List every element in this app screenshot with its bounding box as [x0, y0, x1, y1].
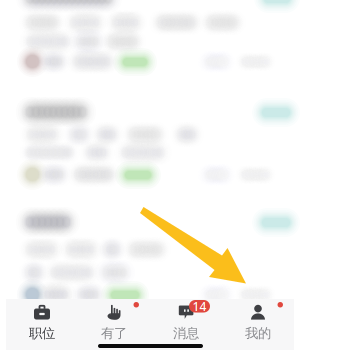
staticText: 我的: [245, 325, 271, 341]
staticText: 职位: [29, 325, 55, 341]
button[interactable]: [6, 198, 294, 306]
button[interactable]: 有了: [78, 299, 150, 350]
staticText: 14: [192, 298, 206, 314]
button[interactable]: [6, 90, 294, 198]
staticText: 有了: [101, 325, 127, 341]
button[interactable]: 职位: [6, 299, 78, 350]
button[interactable]: 我的: [222, 299, 294, 350]
button[interactable]: [6, 0, 294, 90]
staticText: 消息: [173, 325, 199, 341]
button[interactable]: 14: [150, 299, 222, 350]
